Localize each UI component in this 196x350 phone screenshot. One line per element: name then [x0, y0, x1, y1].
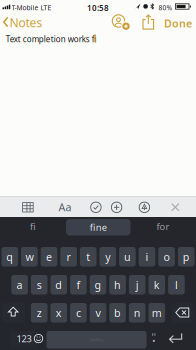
staticText: i [145, 250, 148, 264]
staticText: b [114, 306, 121, 320]
button[interactable]: Numbers [10, 331, 37, 348]
button[interactable]: m [148, 303, 165, 322]
button[interactable]: Delete [171, 303, 194, 322]
staticText: fine [90, 221, 107, 233]
button[interactable]: Dismiss keyboard [170, 202, 180, 212]
button[interactable]: Dictation [150, 332, 157, 342]
button[interactable]: fine [66, 219, 130, 235]
button[interactable]: Emoji [33, 334, 43, 344]
button[interactable]: r [60, 247, 77, 266]
staticText: l [175, 278, 178, 292]
button[interactable]: i [139, 247, 155, 266]
button[interactable]: f [70, 275, 87, 294]
staticText: fi [30, 220, 36, 233]
staticText: t [86, 250, 90, 264]
staticText: v [95, 306, 100, 320]
staticText: 80% [158, 3, 172, 12]
button[interactable]: Share [142, 14, 154, 30]
staticText: h [114, 278, 121, 292]
button[interactable]: Checklist [90, 201, 102, 213]
staticText: T-Mobile LTE [11, 3, 51, 12]
staticText: k [154, 278, 160, 292]
staticText: Aa [58, 200, 71, 214]
button[interactable]: x [50, 303, 67, 322]
button[interactable]: c [70, 303, 87, 322]
button[interactable]: Done [163, 16, 193, 30]
staticText: 123 [16, 332, 31, 345]
button[interactable]: Text format [57, 201, 73, 213]
staticText: Done [164, 16, 192, 30]
staticText: for [156, 220, 169, 233]
button[interactable]: Insert attachment [111, 201, 123, 213]
staticText: z [37, 306, 42, 320]
staticText: w [25, 250, 33, 264]
staticText: a [17, 278, 23, 292]
staticText: p [183, 250, 190, 264]
button[interactable]: b [109, 303, 126, 322]
button[interactable]: j [129, 275, 145, 294]
button[interactable]: u [119, 247, 136, 266]
button[interactable]: Add people [110, 13, 131, 31]
button[interactable]: z [31, 303, 47, 322]
staticText: j [136, 278, 139, 292]
button[interactable]: v [90, 303, 106, 322]
button[interactable]: s [31, 275, 47, 294]
staticText: SwiftKey [89, 337, 103, 342]
button[interactable]: Notes [2, 14, 44, 31]
staticText: e [46, 250, 52, 264]
button[interactable]: l [168, 275, 185, 294]
staticText: Notes [10, 15, 43, 30]
staticText: g [94, 278, 101, 292]
button[interactable]: p [178, 247, 194, 266]
staticText: u [124, 250, 131, 264]
button[interactable]: h [109, 275, 126, 294]
staticText: 10:58 [87, 2, 109, 13]
staticText: c [76, 306, 81, 320]
button[interactable]: a [11, 275, 28, 294]
button[interactable]: fi [1, 216, 65, 236]
button[interactable]: n [129, 303, 145, 322]
staticText: n [134, 306, 141, 320]
button[interactable]: k [148, 275, 165, 294]
staticText: f [76, 278, 80, 292]
button[interactable]: g [90, 275, 106, 294]
button[interactable]: Shift [2, 303, 25, 322]
staticText: Text completion works fi [6, 34, 97, 44]
staticText: y [105, 250, 110, 264]
button[interactable]: Return [168, 333, 183, 344]
button[interactable]: q [1, 247, 18, 266]
staticText: m [152, 306, 162, 320]
staticText: q [6, 250, 13, 264]
button[interactable]: e [41, 247, 57, 266]
button[interactable]: t [80, 247, 96, 266]
button[interactable]: o [158, 247, 175, 266]
staticText: r [67, 250, 71, 264]
button[interactable]: for [131, 216, 195, 236]
staticText: d [55, 278, 62, 292]
button[interactable]: Markup [138, 201, 150, 213]
button[interactable]: y [99, 247, 116, 266]
button[interactable]: Insert table [22, 202, 34, 213]
staticText: s [37, 278, 42, 292]
staticText: x [56, 306, 62, 320]
button[interactable]: w [21, 247, 38, 266]
staticText: o [164, 250, 170, 264]
button[interactable]: d [50, 275, 67, 294]
